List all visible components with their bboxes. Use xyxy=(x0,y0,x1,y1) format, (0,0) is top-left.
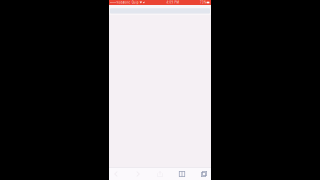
button[interactable] xyxy=(110,8,210,14)
staticText: 4:09 PM xyxy=(166,1,178,4)
button[interactable]: Bookmarks xyxy=(176,168,188,180)
staticText: Vodafone xyxy=(116,1,131,4)
button[interactable]: Tabs xyxy=(198,168,210,180)
staticText: Quip xyxy=(132,1,139,4)
staticText: 73% xyxy=(200,1,206,4)
